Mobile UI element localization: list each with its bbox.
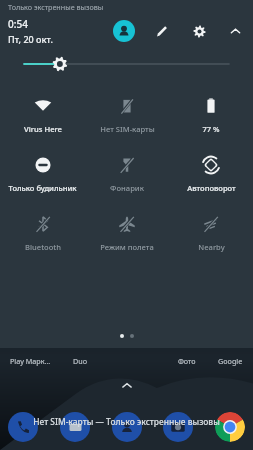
button[interactable]: Яркость xyxy=(0,49,253,79)
staticText: Play Марк… xyxy=(10,356,51,366)
button[interactable]: Нет SIM-карты xyxy=(85,93,169,136)
staticText: Пт, 20 окт. xyxy=(8,33,53,45)
button[interactable]: Свернуть xyxy=(223,19,247,43)
staticText: Только будильник xyxy=(8,183,77,193)
staticText: 77 % xyxy=(202,124,220,134)
staticText: 0:54 xyxy=(8,17,28,31)
button[interactable]: Приложение xyxy=(60,412,90,442)
staticText: Нет SIM-карты xyxy=(100,124,155,134)
staticText: Nearby xyxy=(198,242,225,252)
staticText: Virus Here xyxy=(24,124,62,134)
staticText: Режим полета xyxy=(100,242,154,252)
button[interactable]: Virus Here xyxy=(0,93,85,136)
staticText: Только экстренные вызовы xyxy=(8,2,104,12)
button[interactable]: Приложение xyxy=(112,412,142,442)
button[interactable]: Фонарик xyxy=(85,152,169,195)
button[interactable]: Настройки xyxy=(187,19,211,43)
button[interactable]: Автоповорот xyxy=(169,152,253,195)
button[interactable]: 77 % xyxy=(169,93,253,136)
button[interactable]: Bluetooth xyxy=(0,211,85,254)
button[interactable]: Пользователь xyxy=(113,20,135,42)
button[interactable]: Только будильник xyxy=(0,152,85,195)
button[interactable]: Режим полета xyxy=(85,211,169,254)
staticText: Фото xyxy=(178,356,196,366)
staticText: Bluetooth xyxy=(25,242,61,252)
button[interactable]: Nearby xyxy=(169,211,253,254)
staticText: Нет SIM-карты — Только экстренные вызовы xyxy=(33,416,220,427)
staticText: Google xyxy=(218,356,243,366)
button[interactable]: Приложение xyxy=(8,412,38,442)
staticText: Фонарик xyxy=(110,183,144,193)
staticText: Автоповорот xyxy=(187,183,236,193)
staticText: Duo xyxy=(73,356,88,366)
button[interactable]: Chrome xyxy=(215,412,245,442)
button[interactable]: Приложение xyxy=(163,412,193,442)
button[interactable]: Изменить xyxy=(149,19,173,43)
